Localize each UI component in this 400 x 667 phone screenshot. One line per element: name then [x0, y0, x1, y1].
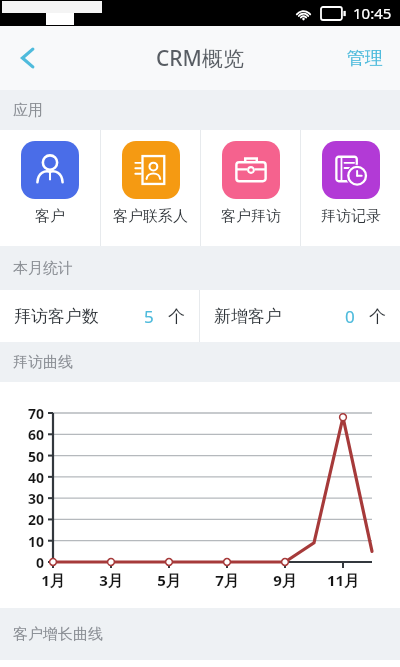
button[interactable]: 客户拜访	[201, 130, 300, 246]
staticText: 拜访客户数	[14, 306, 99, 327]
staticText: 7月	[210, 570, 244, 590]
staticText: 5月	[152, 570, 186, 590]
staticText: 客户增长曲线	[13, 625, 103, 644]
staticText: 40	[28, 468, 45, 487]
staticText: 客户拜访	[221, 207, 281, 226]
staticText: 新增客户	[214, 306, 282, 327]
staticText: 11月	[326, 570, 360, 590]
staticText: 管理	[347, 47, 383, 70]
staticText: 0	[36, 553, 45, 572]
staticText: 个	[369, 306, 386, 327]
staticText: 50	[28, 447, 45, 466]
staticText: 10	[28, 532, 45, 551]
staticText: 3月	[94, 570, 128, 590]
staticText: 拜访记录	[321, 207, 381, 226]
staticText: 10:45	[353, 3, 392, 23]
staticText: 拜访曲线	[13, 353, 73, 372]
button[interactable]: 拜访记录	[301, 130, 400, 246]
staticText: 应用	[13, 101, 43, 120]
staticText: 60	[28, 425, 45, 444]
staticText: 0	[345, 305, 355, 328]
staticText: 5	[144, 305, 154, 328]
button[interactable]: Back	[0, 30, 56, 86]
button[interactable]: 管理	[330, 26, 400, 90]
staticText: 个	[168, 306, 185, 327]
staticText: 客户联系人	[113, 207, 188, 226]
button[interactable]: 客户联系人	[101, 130, 200, 246]
staticText: 1月	[36, 570, 70, 590]
staticText: 本月统计	[13, 259, 73, 278]
staticText: 20	[28, 510, 45, 529]
staticText: 9月	[268, 570, 302, 590]
button[interactable]: 新增客户	[200, 290, 400, 342]
button[interactable]: 客户	[0, 130, 100, 246]
button[interactable]: 拜访客户数	[0, 290, 199, 342]
staticText: 30	[28, 489, 45, 508]
staticText: 客户	[35, 207, 65, 226]
staticText: 70	[28, 404, 45, 423]
staticText: CRM概览	[156, 44, 244, 73]
